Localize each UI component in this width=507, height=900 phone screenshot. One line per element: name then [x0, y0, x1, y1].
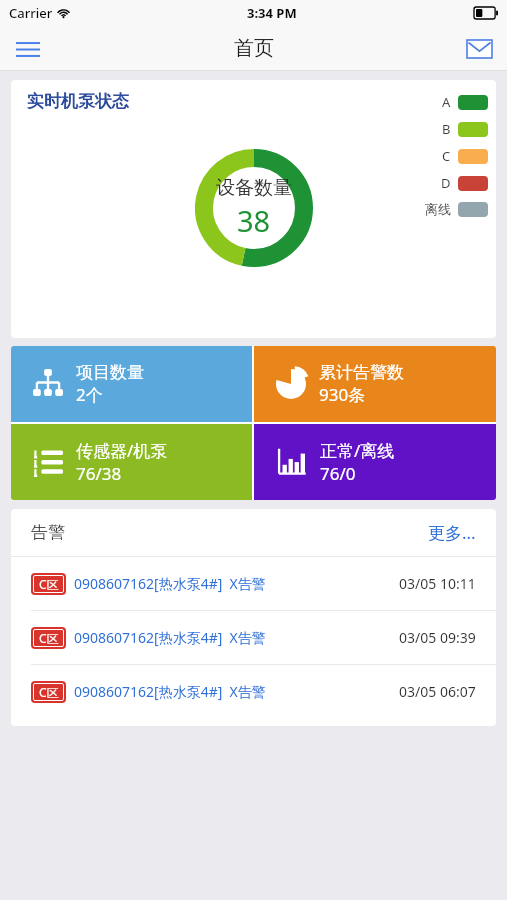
staticText: C	[442, 147, 451, 165]
staticText: D	[441, 174, 451, 192]
staticText: 更多...	[428, 521, 476, 544]
staticText: C区	[39, 630, 59, 646]
staticText: 离线	[425, 201, 451, 217]
button[interactable]: C区	[11, 665, 496, 718]
staticText: 设备数量	[216, 176, 292, 200]
staticText: 76/38	[76, 462, 122, 485]
staticText: 0908607162[热水泵4#] X告警	[74, 682, 266, 701]
staticText: 首页	[234, 36, 274, 61]
staticText: 930条	[319, 383, 366, 406]
staticText: 03/05 10:11	[399, 574, 476, 593]
button[interactable]: 项目数量	[11, 346, 252, 422]
staticText: 03/05 06:07	[399, 682, 476, 701]
staticText: 0908607162[热水泵4#] X告警	[74, 628, 266, 647]
staticText: Carrier	[9, 4, 53, 22]
button[interactable]: 累计告警数	[254, 346, 496, 422]
staticText: 告警	[31, 522, 65, 543]
staticText: 累计告警数	[319, 362, 404, 383]
staticText: 正常/离线	[320, 439, 395, 462]
staticText: A	[442, 93, 451, 111]
button[interactable]: 更多...	[428, 521, 476, 544]
staticText: 03/05 09:39	[399, 628, 476, 647]
staticText: 项目数量	[76, 362, 144, 383]
button[interactable]: Menu	[8, 29, 48, 69]
staticText: 38	[237, 201, 271, 240]
staticText: B	[442, 120, 451, 138]
button[interactable]: 正常/离线	[254, 424, 496, 500]
staticText: 3:34 PM	[247, 4, 297, 22]
button[interactable]: C区	[11, 557, 496, 610]
button[interactable]: 传感器/机泵	[11, 424, 252, 500]
button[interactable]: Messages	[459, 29, 499, 69]
staticText: 传感器/机泵	[76, 439, 168, 462]
staticText: 76/0	[320, 462, 356, 485]
staticText: C区	[39, 576, 59, 592]
staticText: 0908607162[热水泵4#] X告警	[74, 574, 266, 593]
staticText: 2个	[76, 383, 103, 406]
button[interactable]: C区	[11, 611, 496, 664]
staticText: 实时机泵状态	[27, 91, 129, 112]
staticText: C区	[39, 684, 59, 700]
